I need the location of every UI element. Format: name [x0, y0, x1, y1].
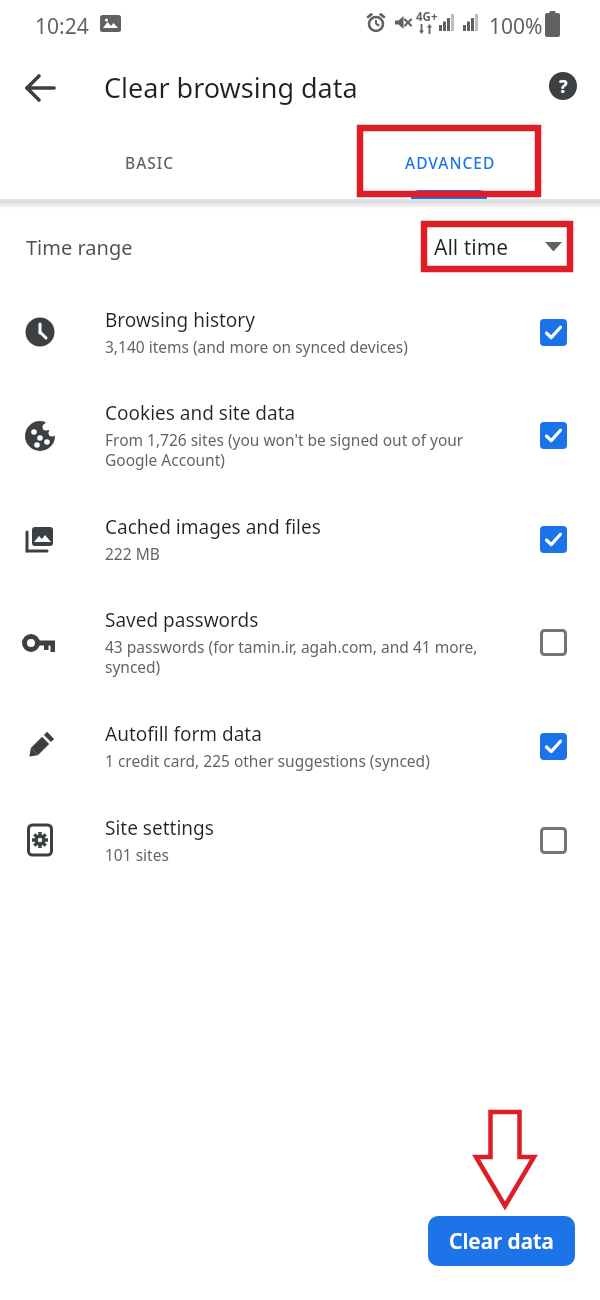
button[interactable]: BASIC: [0, 125, 300, 199]
button[interactable]: [540, 629, 567, 656]
staticText: Clear browsing data: [104, 69, 358, 106]
staticText: Clear data: [449, 1227, 554, 1256]
staticText: BASIC: [125, 152, 175, 173]
staticText: Browsing history: [105, 307, 255, 333]
staticText: 10:24: [35, 12, 89, 41]
button[interactable]: Site settings: [0, 793, 600, 887]
button[interactable]: [25, 76, 57, 108]
button[interactable]: Cached images and files: [0, 492, 600, 586]
staticText: All time: [434, 233, 509, 262]
button[interactable]: Browsing history: [0, 285, 600, 379]
staticText: Cached images and files: [105, 514, 321, 540]
staticText: Time range: [26, 234, 133, 261]
button[interactable]: Clear data: [428, 1216, 575, 1266]
staticText: Saved passwords: [105, 607, 259, 633]
button[interactable]: Autofill form data: [0, 699, 600, 793]
staticText: 100%: [489, 12, 543, 41]
staticText: ?: [559, 74, 568, 99]
staticText: 222 MB: [105, 543, 160, 564]
button[interactable]: [540, 422, 567, 449]
button[interactable]: All time: [434, 219, 562, 275]
staticText: Cookies and site data: [105, 400, 296, 426]
button[interactable]: [540, 733, 567, 760]
staticText: 43 passwords (for tamin.ir, agah.com, an…: [105, 636, 478, 678]
staticText: 3,140 items (and more on synced devices): [105, 336, 408, 357]
button[interactable]: Cookies and site data: [0, 379, 600, 492]
button[interactable]: [540, 526, 567, 553]
button[interactable]: [540, 827, 567, 854]
button[interactable]: [540, 319, 567, 346]
button[interactable]: ?: [549, 72, 577, 100]
button[interactable]: Saved passwords: [0, 586, 600, 699]
staticText: 4G+: [416, 9, 438, 25]
staticText: Autofill form data: [105, 721, 262, 747]
staticText: 1 credit card, 225 other suggestions (sy…: [105, 750, 430, 771]
staticText: ADVANCED: [405, 152, 496, 173]
button[interactable]: ADVANCED: [300, 125, 600, 199]
staticText: From 1,726 sites (you won't be signed ou…: [105, 429, 464, 471]
staticText: Site settings: [105, 815, 214, 841]
staticText: 101 sites: [105, 844, 169, 865]
